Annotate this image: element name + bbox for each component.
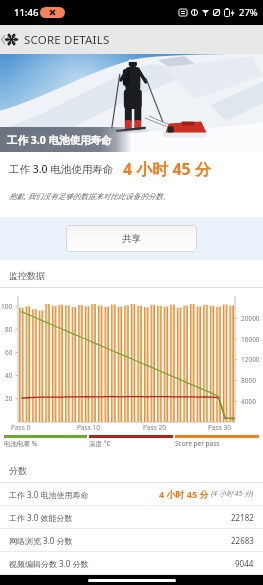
staticText: 4 小时 45 分 — [159, 488, 209, 500]
button[interactable]: Home — [88, 579, 176, 582]
staticText: 22683 — [231, 535, 254, 546]
staticText: 27% — [239, 6, 258, 19]
staticText: (4 小时 45 分) — [211, 489, 254, 499]
button[interactable]: 工作 3.0 电池使用寿命 — [0, 483, 263, 505]
staticText: 20000 — [241, 314, 260, 323]
staticText: 40 — [5, 371, 13, 380]
staticText: Pass 30 — [208, 423, 231, 432]
button[interactable]: 网络浏览 3.0 分数 — [0, 529, 263, 551]
staticText: 视频编辑分数 3.0 分数 — [9, 558, 89, 569]
staticText: 抱歉, 我们没有足够的数据来对比此设备的分数。 — [9, 191, 171, 201]
staticText: Pass 20 — [143, 423, 166, 432]
button[interactable]: 工作 3.0 效能分数 — [0, 506, 263, 528]
staticText: 8000 — [241, 376, 256, 385]
staticText: Pass 10 — [77, 423, 100, 432]
staticText: SCORE DETAILS — [24, 32, 110, 48]
staticText: 12000 — [241, 355, 260, 364]
staticText: 共享 — [122, 233, 141, 245]
button[interactable]: 视频编辑分数 3.0 分数 — [0, 552, 263, 574]
staticText: 工作 3.0 电池使用寿命 — [9, 489, 89, 500]
staticText: 工作 3.0 效能分数 — [9, 512, 73, 523]
button[interactable]: Recording indicator — [40, 7, 65, 18]
staticText: 工作 3.0 电池使用寿命 — [9, 162, 114, 176]
staticText: 22182 — [231, 512, 254, 523]
staticText: 9044 — [235, 558, 254, 569]
staticText: 电池电量 % — [4, 439, 38, 448]
staticText: 网络浏览 3.0 分数 — [9, 535, 73, 546]
staticText: 60 — [5, 348, 13, 357]
staticText: Score per pass — [175, 439, 220, 448]
staticText: 80 — [5, 325, 13, 334]
staticText: 100 — [1, 302, 13, 311]
staticText: 工作 3.0 电池使用寿命 — [7, 133, 112, 147]
button[interactable]: 共享 — [66, 225, 197, 252]
staticText: 16000 — [241, 335, 260, 344]
staticText: 11:46 — [14, 6, 39, 19]
staticText: 4 小时 45 分 — [123, 158, 211, 180]
staticText: 4000 — [241, 397, 256, 406]
staticText: 温度 °C — [89, 439, 111, 448]
staticText: 监控数据 — [9, 270, 45, 281]
button[interactable]: Back — [0, 25, 5, 54]
staticText: Pass 0 — [11, 423, 31, 432]
staticText: 20 — [5, 394, 13, 403]
staticText: 分数 — [9, 465, 27, 476]
